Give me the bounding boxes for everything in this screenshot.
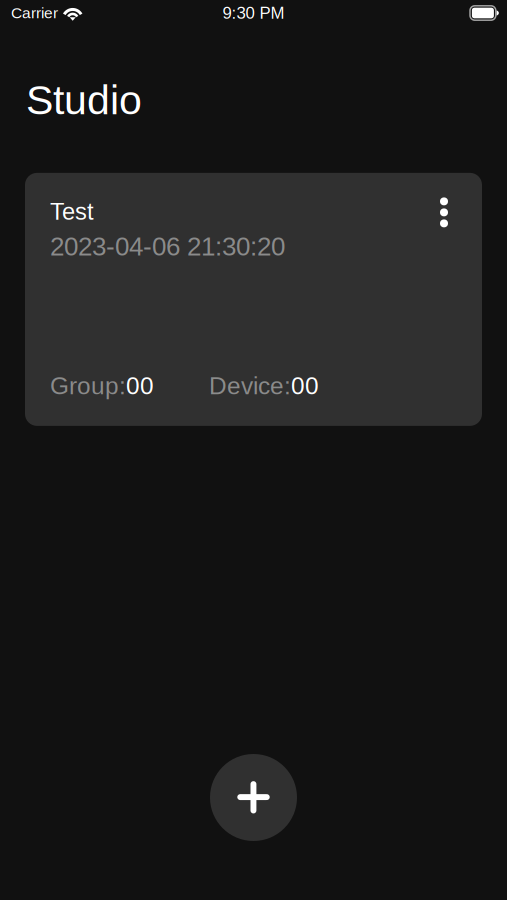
staticText: Carrier [11, 4, 58, 22]
button[interactable]: More options [425, 192, 463, 232]
staticText: Device: [209, 372, 291, 399]
staticText: 9:30 PM [222, 4, 284, 22]
button[interactable]: Test [25, 173, 482, 426]
staticText: 00 [126, 372, 154, 399]
staticText: 00 [291, 372, 319, 399]
button[interactable]: Add [210, 754, 297, 841]
staticText: Test [50, 198, 94, 225]
staticText: Group: [50, 372, 126, 399]
staticText: Studio [26, 77, 142, 123]
staticText: 2023-04-06 21:30:20 [50, 232, 285, 261]
